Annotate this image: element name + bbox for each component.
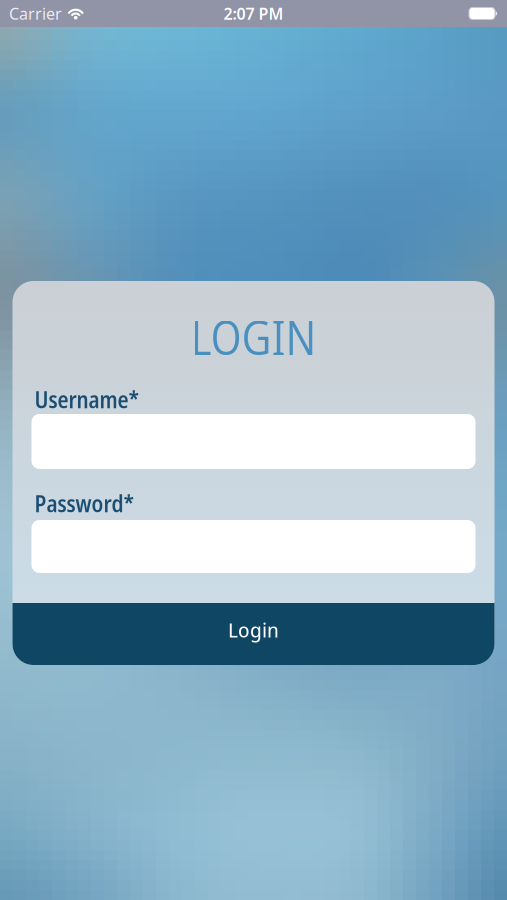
staticText: Login (228, 615, 279, 643)
staticText: Password* (34, 488, 134, 519)
staticText: 2:07 PM (223, 3, 283, 24)
staticText: Carrier (9, 3, 62, 24)
button[interactable]: Login (12, 603, 494, 665)
staticText: Username* (34, 384, 139, 415)
staticText: LOGIN (190, 305, 316, 369)
